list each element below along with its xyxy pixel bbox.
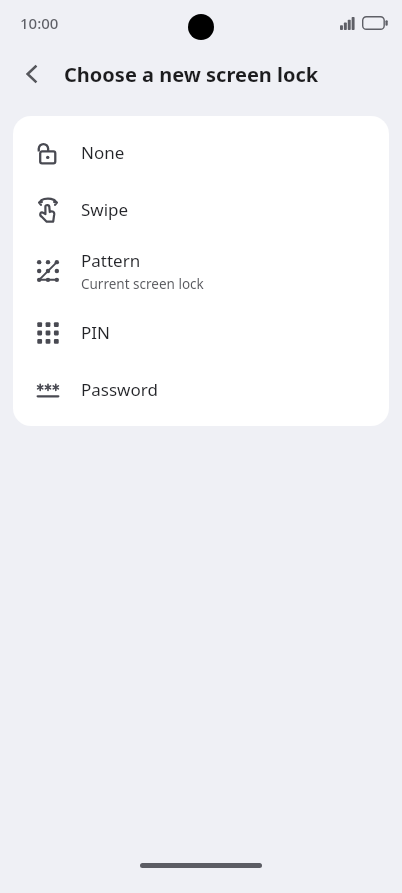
staticText: Swipe [81, 198, 129, 221]
button[interactable]: Swipe [13, 181, 389, 238]
button[interactable]: Password [13, 361, 389, 418]
button[interactable]: Back [10, 52, 54, 96]
staticText: Pattern [81, 249, 141, 272]
staticText: PIN [81, 321, 110, 344]
staticText: Current screen lock [81, 275, 204, 293]
staticText: None [81, 141, 125, 164]
button[interactable]: Pattern [13, 238, 389, 304]
staticText: Password [81, 378, 158, 401]
staticText: Choose a new screen lock [64, 61, 319, 88]
button[interactable]: None [13, 124, 389, 181]
button[interactable]: PIN [13, 304, 389, 361]
staticText: 10:00 [20, 13, 59, 33]
